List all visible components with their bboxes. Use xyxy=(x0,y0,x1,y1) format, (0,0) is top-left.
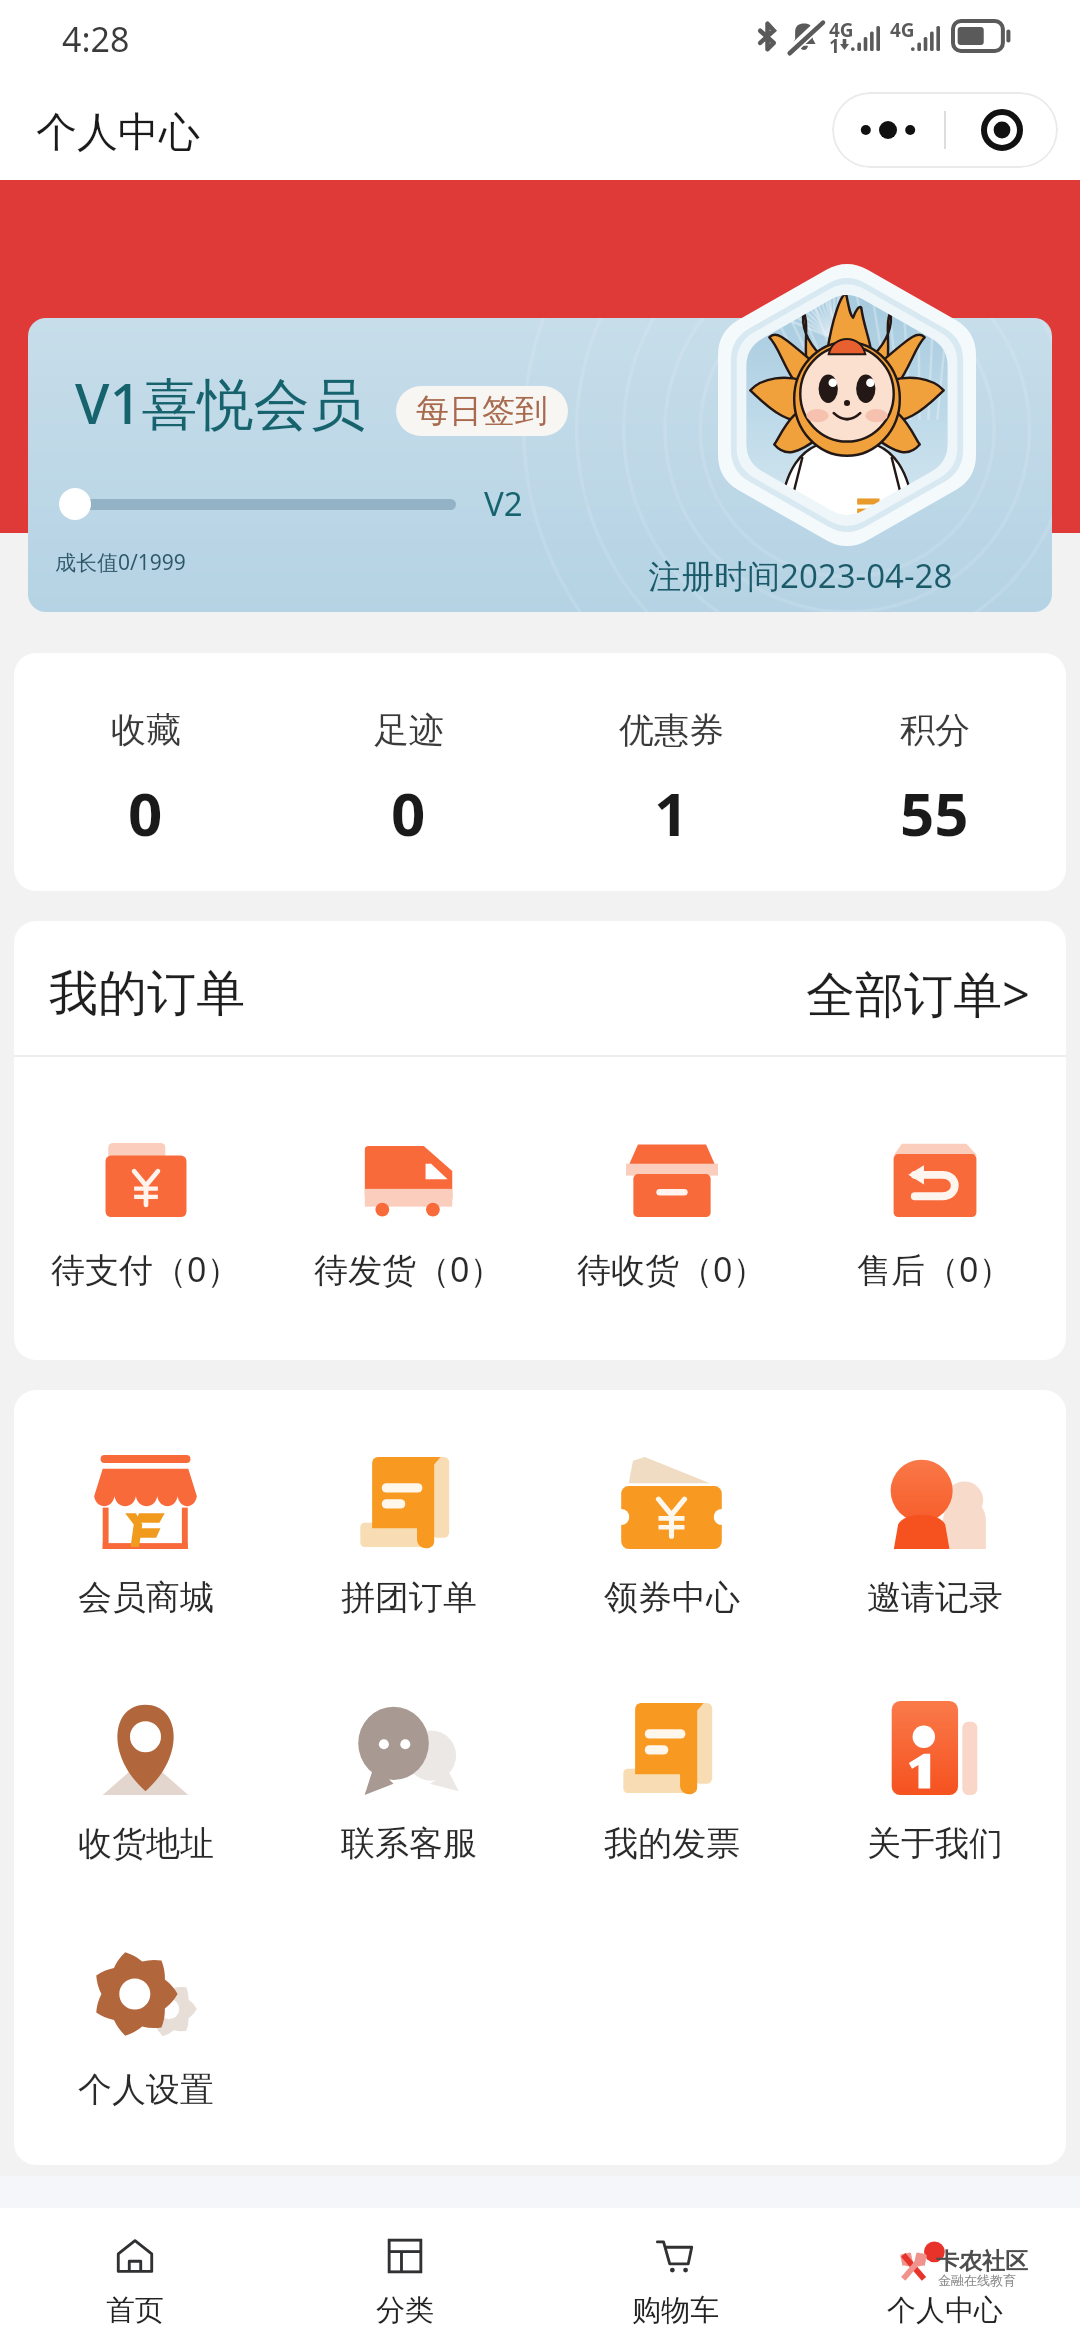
staticText: 个人中心 xyxy=(887,2292,1003,2329)
staticText: 待收货（0） xyxy=(577,1246,767,1292)
button[interactable]: 首页 xyxy=(0,2208,270,2340)
button[interactable]: 个人中心 xyxy=(810,2208,1080,2340)
button[interactable]: 我的发票 xyxy=(540,1701,803,1947)
staticText: 收藏 xyxy=(111,708,181,752)
staticText: 全部订单> xyxy=(806,960,1031,1027)
button[interactable]: 优惠券 xyxy=(540,653,803,891)
button[interactable]: 待支付（0） xyxy=(14,1057,277,1360)
staticText: 积分 xyxy=(900,708,970,752)
staticText: 4G xyxy=(829,17,854,43)
button[interactable]: 邀请记录 xyxy=(803,1455,1066,1701)
staticText: 领券中心 xyxy=(604,1576,740,1619)
button[interactable]: 个人设置 xyxy=(14,1947,277,2114)
staticText: 拼团订单 xyxy=(341,1576,477,1619)
button[interactable]: 足迹 xyxy=(277,653,540,891)
staticText: 4G xyxy=(890,17,915,43)
button[interactable]: 分类 xyxy=(270,2208,540,2340)
staticText: 待支付（0） xyxy=(51,1246,241,1292)
staticText: 购物车 xyxy=(632,2292,719,2329)
staticText: 足迹 xyxy=(374,708,444,752)
button[interactable]: 拼团订单 xyxy=(277,1455,540,1701)
button[interactable]: 待收货（0） xyxy=(540,1057,803,1360)
staticText: 个人设置 xyxy=(78,2068,214,2111)
staticText: 首页 xyxy=(106,2292,164,2329)
button[interactable]: 积分 xyxy=(803,653,1066,891)
staticText: V1喜悦会员 xyxy=(75,364,366,440)
button[interactable]: 我的订单 xyxy=(14,921,1066,1055)
button[interactable]: V1喜悦会员 xyxy=(28,318,1052,612)
button[interactable]: 会员商城 xyxy=(14,1455,277,1701)
staticText: 优惠券 xyxy=(619,708,724,752)
staticText: 55 xyxy=(900,772,969,854)
button[interactable]: 联系客服 xyxy=(277,1701,540,1947)
staticText: 1 xyxy=(829,33,840,59)
staticText: 分类 xyxy=(376,2292,434,2329)
staticText: 联系客服 xyxy=(341,1822,477,1865)
staticText: 关于我们 xyxy=(867,1822,1003,1865)
staticText: 待发货（0） xyxy=(314,1246,504,1292)
staticText: 售后（0） xyxy=(857,1246,1013,1292)
button[interactable]: 售后（0） xyxy=(803,1057,1066,1360)
staticText: 0 xyxy=(128,772,163,854)
staticText: 成长值0/1999 xyxy=(55,548,186,577)
button[interactable]: More xyxy=(832,92,944,168)
staticText: 1 xyxy=(654,772,689,854)
staticText: 会员商城 xyxy=(78,1576,214,1619)
staticText: 我的发票 xyxy=(604,1822,740,1865)
button[interactable]: 收货地址 xyxy=(14,1701,277,1947)
staticText: 收货地址 xyxy=(78,1822,214,1865)
staticText: 注册时间2023-04-28 xyxy=(648,553,953,598)
staticText: 我的订单 xyxy=(49,963,245,1025)
staticText: 邀请记录 xyxy=(867,1576,1003,1619)
button[interactable]: 收藏 xyxy=(14,653,277,891)
staticText: 个人中心 xyxy=(36,107,200,159)
staticText: V2 xyxy=(484,481,523,526)
staticText: 每日签到 xyxy=(416,390,548,432)
staticText: 4:28 xyxy=(62,16,130,62)
button[interactable]: 每日签到 xyxy=(396,386,568,436)
button[interactable]: Close xyxy=(946,92,1058,168)
button[interactable]: 关于我们 xyxy=(803,1701,1066,1947)
staticText: 金融在线教育 xyxy=(938,2272,1016,2288)
button[interactable]: 待发货（0） xyxy=(277,1057,540,1360)
staticText: 0 xyxy=(391,772,426,854)
staticText: 卡农社区 xyxy=(936,2247,1028,2276)
button[interactable]: 购物车 xyxy=(540,2208,810,2340)
button[interactable]: 领券中心 xyxy=(540,1455,803,1701)
